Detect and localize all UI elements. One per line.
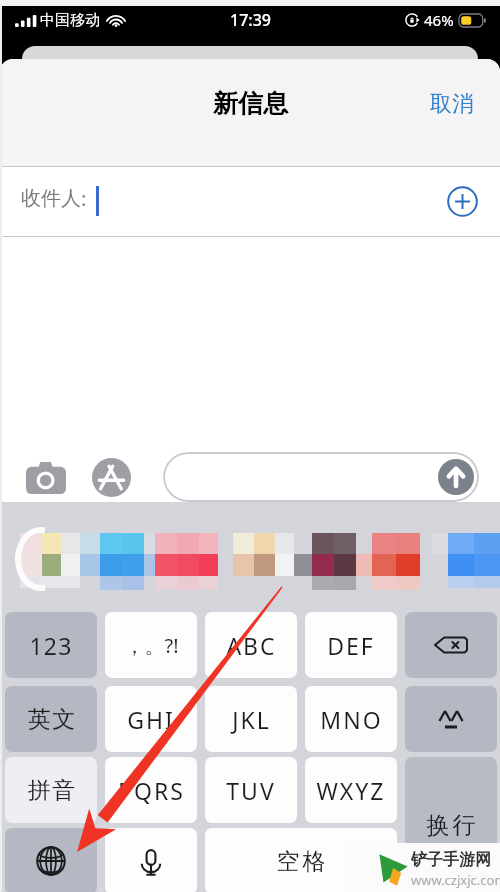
staticText: MNO [320, 704, 383, 735]
button[interactable]: Send [438, 459, 474, 495]
button[interactable]: 取消 [406, 78, 500, 130]
button[interactable]: Camera [26, 460, 66, 494]
staticText: 换行 [425, 811, 477, 840]
button[interactable]: Change keyboard [5, 828, 97, 892]
staticText: 取消 [430, 90, 474, 118]
button[interactable]: Voice input [105, 828, 197, 892]
button[interactable]: MNO [305, 686, 397, 752]
staticText: 123 [29, 630, 73, 661]
button[interactable]: ABC [205, 612, 297, 678]
staticText: 46% [424, 10, 454, 30]
button[interactable]: PQRS [105, 757, 197, 823]
button[interactable]: 拼音 [5, 757, 97, 823]
button[interactable]: 空格 [205, 828, 397, 892]
button[interactable]: 英文 [5, 686, 97, 752]
staticText: : [81, 185, 87, 212]
staticText: TUV [226, 775, 276, 806]
button[interactable]: WXYZ [305, 757, 397, 823]
staticText: GHI [127, 704, 175, 735]
staticText: 新信息 [213, 88, 288, 119]
staticText: 英文 [27, 705, 76, 734]
button[interactable]: Send [163, 452, 479, 502]
staticText: www.czjxjc.com [411, 871, 500, 889]
staticText: PQRS [118, 775, 185, 806]
staticText: 收件人 [21, 186, 81, 211]
button[interactable]: 123 [5, 612, 97, 678]
staticText: JKL [232, 704, 271, 735]
button[interactable]: DEF [305, 612, 397, 678]
button[interactable]: JKL [205, 686, 297, 752]
staticText: 空格 [275, 847, 327, 876]
button[interactable]: Add contact [447, 186, 478, 217]
button[interactable]: TUV [205, 757, 297, 823]
button[interactable]: ，。?! [105, 612, 197, 678]
button[interactable]: App Store [92, 458, 131, 497]
staticText: ，。?! [124, 632, 179, 659]
button[interactable]: Emoticons [405, 686, 497, 752]
staticText: DEF [327, 630, 375, 661]
button[interactable]: GHI [105, 686, 197, 752]
staticText: 拼音 [27, 776, 76, 805]
staticText: 铲子手游网 [411, 850, 491, 870]
button[interactable]: Delete [405, 612, 497, 678]
staticText: 中国移动 [40, 11, 100, 30]
staticText: WXYZ [316, 775, 386, 806]
staticText: ABC [226, 630, 277, 661]
button[interactable]: 换行 [405, 757, 497, 892]
staticText: 17:39 [230, 9, 271, 31]
